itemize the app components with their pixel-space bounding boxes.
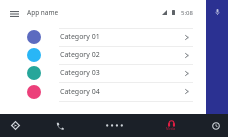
- button[interactable]: Navigation: [4, 114, 26, 137]
- button[interactable]: Media: [160, 114, 182, 137]
- staticText: 5:08: [181, 9, 193, 17]
- button[interactable]: Phone: [49, 114, 71, 137]
- button[interactable]: Category 02: [0, 46, 228, 64]
- staticText: Category 03: [60, 68, 100, 78]
- staticText: Category 01: [60, 32, 100, 42]
- staticText: Category 02: [60, 50, 100, 60]
- button[interactable]: Category 01: [0, 28, 228, 46]
- button[interactable]: Menu: [5, 7, 23, 20]
- button[interactable]: Apps: [103, 114, 125, 137]
- button[interactable]: Voice assistant: [206, 0, 228, 114]
- staticText: Media: [166, 127, 176, 131]
- staticText: App name: [27, 8, 59, 17]
- button[interactable]: Category 03: [0, 64, 228, 82]
- button[interactable]: Category 04: [0, 82, 228, 101]
- button[interactable]: Recents: [205, 114, 227, 137]
- staticText: Category 04: [60, 87, 100, 97]
